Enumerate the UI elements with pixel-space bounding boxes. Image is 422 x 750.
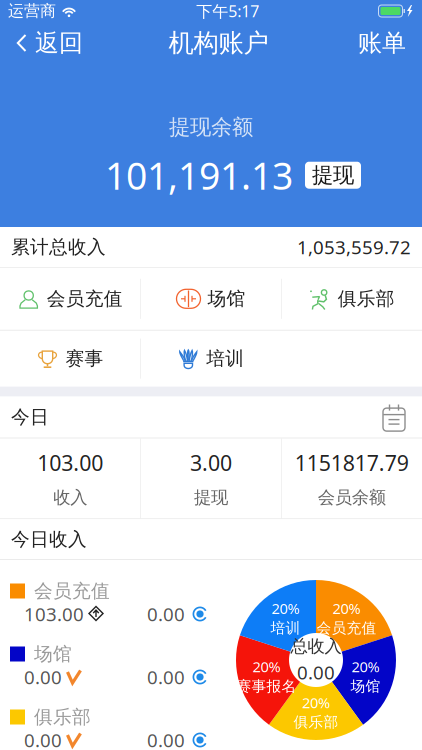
- staticText: 账单: [358, 28, 406, 58]
- staticText: 103.00: [24, 602, 84, 626]
- staticText: 赛事报名: [236, 677, 296, 695]
- staticText: 20%: [271, 599, 299, 618]
- staticText: 101,191.13: [105, 150, 293, 200]
- button[interactable]: 选择日期: [377, 400, 411, 434]
- staticText: 赛事: [65, 347, 103, 370]
- staticText: 会员充值: [34, 579, 110, 602]
- button[interactable]: 返回: [0, 22, 95, 64]
- staticText: 今日: [11, 406, 49, 428]
- staticText: 1,053,559.72: [297, 235, 411, 259]
- staticText: 俱乐部: [34, 705, 91, 728]
- button[interactable]: 培训: [141, 331, 281, 387]
- staticText: 0.00: [147, 602, 185, 626]
- staticText: 20%: [351, 657, 379, 676]
- button[interactable]: 赛事: [0, 331, 140, 387]
- staticText: 场馆: [34, 642, 72, 665]
- staticText: 运营商: [8, 1, 56, 21]
- staticText: 1151817.79: [295, 449, 409, 477]
- staticText: 机构账户: [168, 27, 268, 58]
- staticText: 返回: [35, 28, 83, 58]
- staticText: 下午5:17: [196, 0, 259, 22]
- staticText: 今日收入: [11, 528, 87, 551]
- staticText: 0.00: [297, 660, 335, 685]
- staticText: 总收入: [290, 635, 341, 657]
- button[interactable]: 俱乐部: [282, 268, 422, 330]
- staticText: 俱乐部: [338, 287, 395, 310]
- staticText: 会员充值: [317, 619, 377, 637]
- staticText: 提现余额: [169, 114, 253, 140]
- staticText: 0.00: [147, 665, 185, 689]
- staticText: 0.00: [147, 728, 185, 750]
- button[interactable]: 提现: [305, 162, 361, 189]
- staticText: 场馆: [350, 677, 380, 695]
- staticText: 提现: [194, 487, 228, 508]
- staticText: 会员充值: [47, 287, 123, 310]
- button[interactable]: 账单: [342, 22, 422, 64]
- staticText: 累计总收入: [11, 235, 106, 258]
- staticText: 0.00: [24, 665, 62, 689]
- staticText: 俱乐部: [293, 713, 338, 731]
- staticText: 会员余额: [318, 487, 386, 508]
- button[interactable]: 会员充值: [0, 268, 140, 330]
- staticText: 收入: [53, 487, 87, 508]
- staticText: 提现: [312, 162, 354, 188]
- staticText: 3.00: [190, 449, 232, 477]
- staticText: 20%: [252, 657, 280, 676]
- staticText: 培训: [270, 619, 300, 637]
- staticText: 0.00: [24, 728, 62, 750]
- button[interactable]: 场馆: [141, 268, 281, 330]
- staticText: 培训: [206, 347, 244, 370]
- staticText: 103.00: [37, 449, 103, 477]
- staticText: 20%: [302, 693, 330, 712]
- staticText: 20%: [333, 599, 361, 618]
- staticText: 场馆: [207, 287, 245, 310]
